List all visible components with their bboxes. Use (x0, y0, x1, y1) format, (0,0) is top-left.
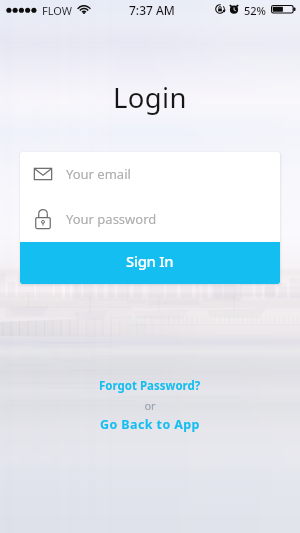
other: Alarm (229, 3, 239, 15)
button[interactable]: Password (20, 196, 280, 242)
staticText: Login (0, 79, 300, 116)
staticText: Your password (66, 210, 157, 228)
button[interactable]: Go Back to App (0, 416, 300, 433)
other: Password (34, 209, 52, 229)
staticText: Your email (66, 165, 131, 183)
other: Battery 52 percent (271, 5, 297, 15)
staticText: Go Back to App (100, 416, 200, 433)
other: Rotation lock (215, 4, 225, 14)
staticText: 52% (244, 3, 266, 18)
button[interactable]: Forgot Password? (0, 378, 300, 394)
staticText: FLOW (42, 3, 72, 18)
staticText: 7:37 AM (129, 2, 175, 18)
other: Email (34, 164, 52, 184)
staticText: Forgot Password? (99, 378, 201, 394)
button[interactable]: Sign In (20, 242, 280, 284)
staticText: Sign In (126, 251, 174, 271)
staticText: or (0, 398, 300, 413)
button[interactable]: Email (20, 152, 280, 196)
